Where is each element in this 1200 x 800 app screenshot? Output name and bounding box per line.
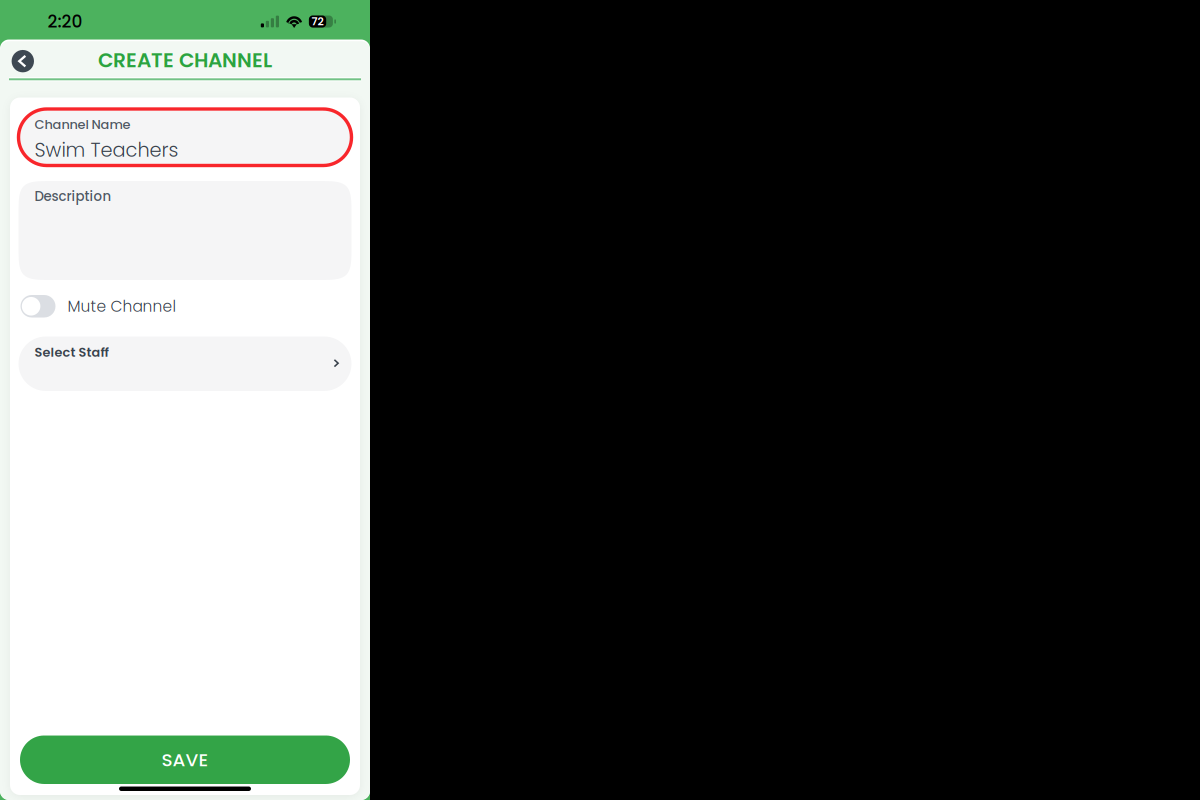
staticText: Channel Name [34, 115, 130, 134]
button[interactable]: Back [4, 42, 42, 80]
staticText: Select Staff [34, 343, 108, 361]
staticText: 72 [311, 14, 323, 29]
staticText: CREATE CHANNEL [98, 46, 272, 74]
staticText: 2:20 [47, 10, 82, 33]
staticText: Description [34, 187, 111, 206]
button[interactable]: Select Staff [18, 336, 351, 391]
staticText: Mute Channel [67, 295, 176, 317]
staticText: SAVE [161, 747, 208, 773]
button[interactable]: Channel Name [18, 109, 351, 165]
button[interactable]: SAVE [20, 735, 350, 784]
staticText: Swim Teachers [34, 136, 178, 163]
button[interactable]: Description [18, 181, 351, 280]
button[interactable]: Mute Channel [18, 295, 351, 317]
